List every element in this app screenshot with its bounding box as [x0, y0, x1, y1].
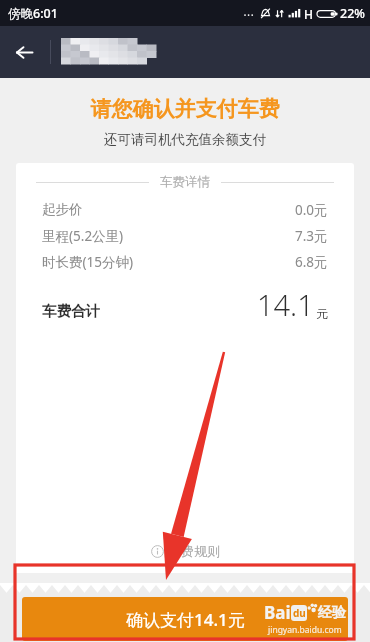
staticText: Bai: [264, 601, 291, 624]
staticText: 请您确认并支付车费: [0, 96, 370, 122]
staticText: du: [293, 606, 306, 620]
staticText: 经验: [318, 604, 346, 622]
staticText: 车费合计: [42, 302, 100, 320]
button[interactable]: 计费规则: [151, 543, 220, 559]
staticText: 6.8元: [295, 253, 328, 271]
staticText: 还可请司机代充值余额支付: [0, 131, 370, 148]
staticText: 里程(5.2公里): [42, 227, 124, 245]
staticText: 22%: [340, 5, 365, 22]
staticText: 7.3元: [295, 227, 328, 245]
staticText: 计费规则: [168, 543, 220, 559]
staticText: jingyan.baidu.com: [268, 624, 342, 636]
button[interactable]: 确认支付14.1元: [22, 597, 348, 641]
staticText: 0.0元: [295, 201, 328, 219]
staticText: 14.1: [257, 285, 314, 324]
staticText: 时长费(15分钟): [42, 253, 134, 271]
staticText: 车费详情: [160, 174, 210, 190]
staticText: 傍晚6:01: [8, 5, 58, 22]
staticText: 起步价: [42, 201, 83, 218]
staticText: H: [304, 6, 313, 22]
button[interactable]: Back: [0, 28, 48, 76]
staticText: 确认支付14.1元: [126, 608, 245, 631]
staticText: 元: [316, 306, 328, 321]
